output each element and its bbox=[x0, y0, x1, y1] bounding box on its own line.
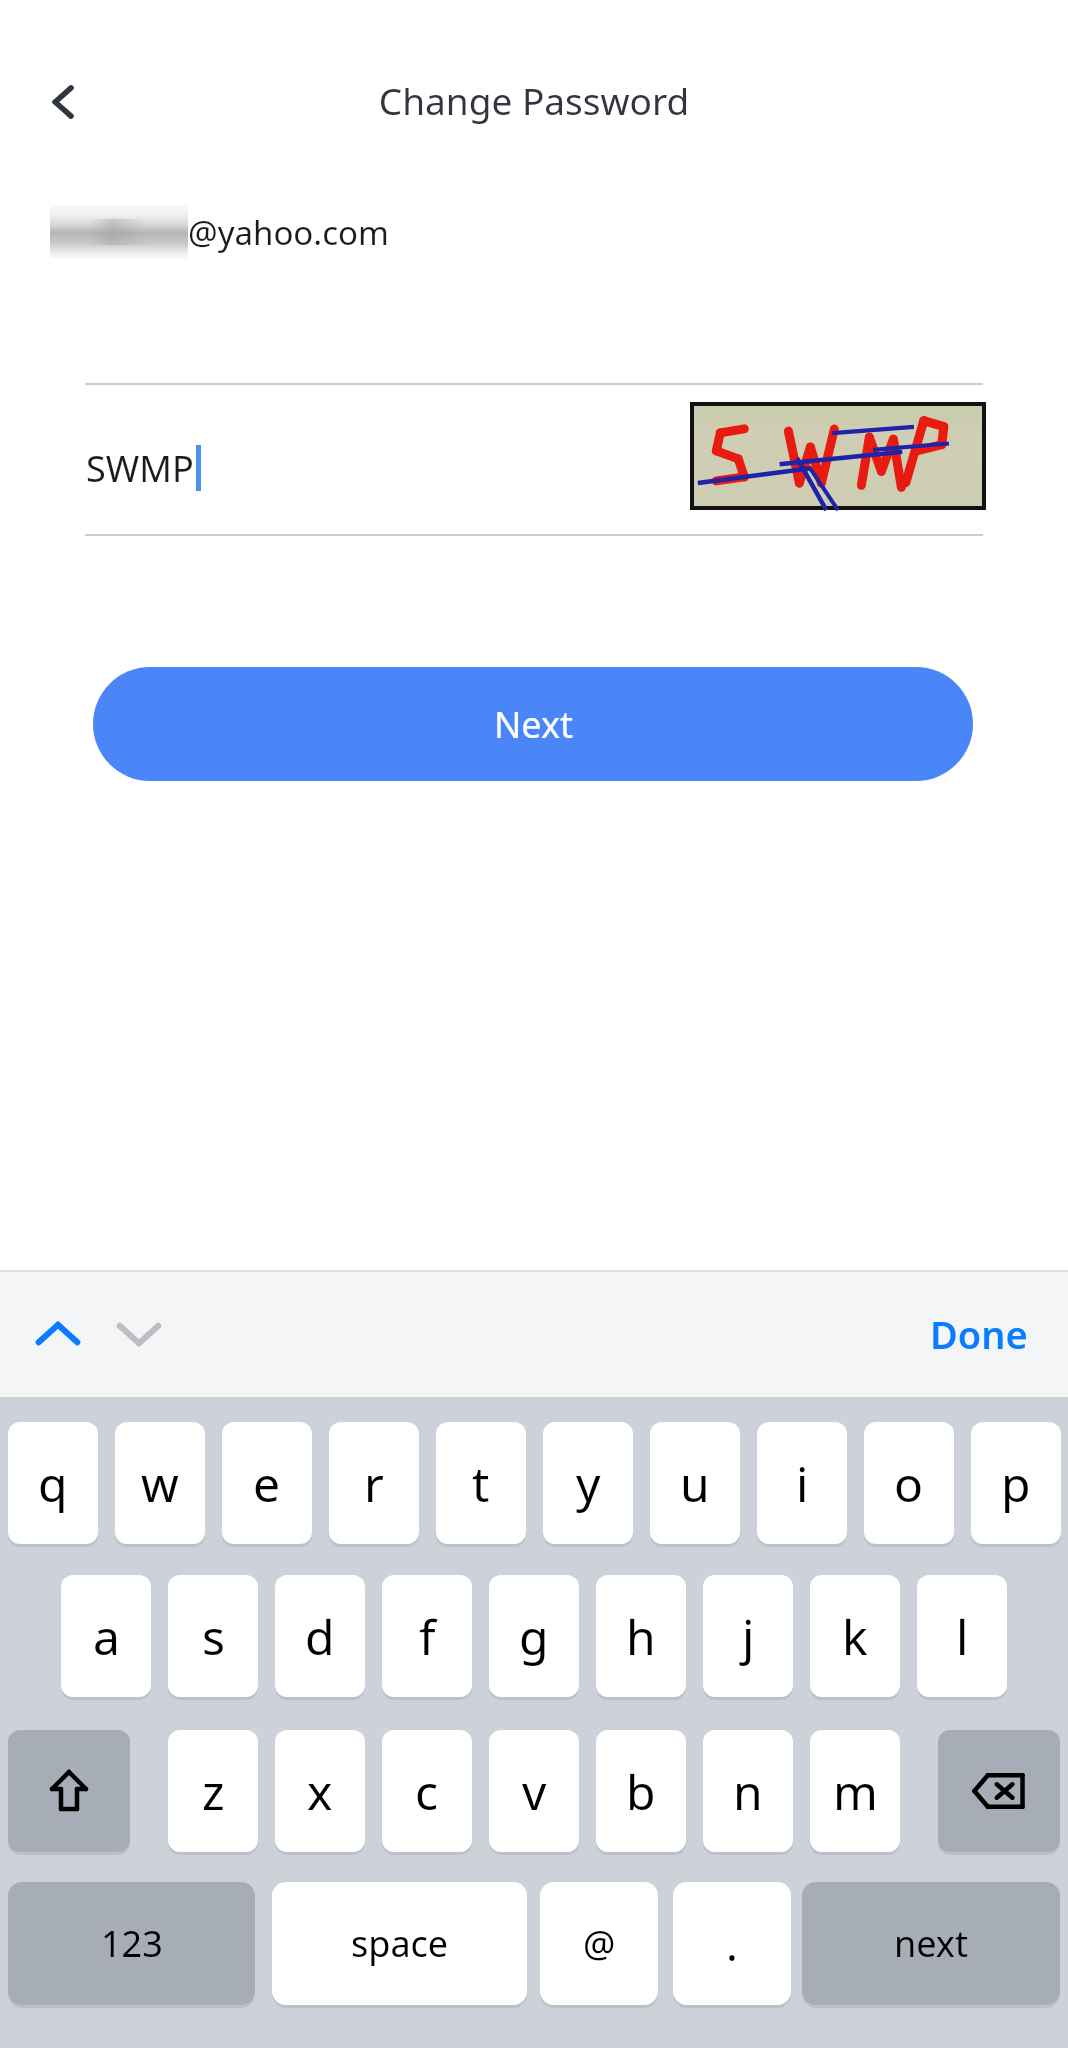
staticText: e bbox=[253, 1451, 281, 1516]
button[interactable]: x bbox=[275, 1730, 365, 1852]
button[interactable]: w bbox=[115, 1422, 205, 1544]
staticText: m bbox=[833, 1759, 878, 1824]
staticText: Next bbox=[494, 700, 573, 749]
staticText: @yahoo.com bbox=[188, 210, 389, 255]
staticText: l bbox=[956, 1604, 969, 1669]
button[interactable]: d bbox=[275, 1575, 365, 1697]
button[interactable]: i bbox=[757, 1422, 847, 1544]
button[interactable]: r bbox=[329, 1422, 419, 1544]
staticText: j bbox=[742, 1604, 755, 1669]
button[interactable]: y bbox=[543, 1422, 633, 1544]
button[interactable]: Shift bbox=[8, 1730, 130, 1852]
staticText: r bbox=[364, 1451, 384, 1516]
staticText: t bbox=[472, 1451, 490, 1516]
button[interactable]: Next bbox=[93, 667, 973, 781]
staticText: 123 bbox=[101, 1919, 163, 1968]
staticText: Change Password bbox=[0, 75, 1068, 125]
button[interactable]: m bbox=[810, 1730, 900, 1852]
staticText: z bbox=[202, 1759, 225, 1824]
button[interactable]: q bbox=[8, 1422, 98, 1544]
button[interactable]: . bbox=[673, 1882, 791, 2005]
button[interactable]: o bbox=[864, 1422, 954, 1544]
staticText: i bbox=[796, 1451, 809, 1516]
button[interactable]: a bbox=[61, 1575, 151, 1697]
button[interactable]: Captcha image, refresh bbox=[692, 404, 984, 508]
button[interactable]: next bbox=[802, 1882, 1060, 2005]
button[interactable]: e bbox=[222, 1422, 312, 1544]
staticText: next bbox=[894, 1919, 968, 1968]
button[interactable]: c bbox=[382, 1730, 472, 1852]
button[interactable]: v bbox=[489, 1730, 579, 1852]
staticText: d bbox=[305, 1604, 335, 1669]
staticText: n bbox=[733, 1759, 763, 1824]
staticText: v bbox=[522, 1759, 547, 1824]
staticText: f bbox=[419, 1604, 436, 1669]
staticText: g bbox=[519, 1604, 549, 1669]
staticText: space bbox=[351, 1919, 449, 1968]
staticText: c bbox=[415, 1759, 439, 1824]
button[interactable]: h bbox=[596, 1575, 686, 1697]
button[interactable]: space bbox=[272, 1882, 527, 2005]
button[interactable]: g bbox=[489, 1575, 579, 1697]
staticText: u bbox=[680, 1451, 710, 1516]
button[interactable]: 123 bbox=[8, 1882, 255, 2005]
button[interactable]: Back bbox=[24, 62, 104, 142]
staticText: a bbox=[93, 1604, 120, 1669]
button[interactable]: b bbox=[596, 1730, 686, 1852]
button[interactable]: s bbox=[168, 1575, 258, 1697]
button[interactable]: n bbox=[703, 1730, 793, 1852]
button[interactable]: Backspace bbox=[938, 1730, 1060, 1852]
staticText: y bbox=[576, 1451, 601, 1516]
staticText: o bbox=[894, 1451, 924, 1516]
staticText: k bbox=[842, 1604, 868, 1669]
staticText: SWMP bbox=[86, 444, 194, 493]
staticText: . bbox=[726, 1914, 738, 1974]
button[interactable]: SWMP bbox=[86, 436, 201, 500]
staticText: b bbox=[626, 1759, 656, 1824]
button[interactable]: t bbox=[436, 1422, 526, 1544]
staticText: x bbox=[307, 1759, 333, 1824]
staticText: p bbox=[1001, 1451, 1031, 1516]
button[interactable]: @ bbox=[540, 1882, 658, 2005]
button[interactable]: f bbox=[382, 1575, 472, 1697]
button[interactable]: j bbox=[703, 1575, 793, 1697]
button[interactable]: l bbox=[917, 1575, 1007, 1697]
button[interactable]: u bbox=[650, 1422, 740, 1544]
button[interactable]: z bbox=[168, 1730, 258, 1852]
button[interactable]: Done bbox=[930, 1308, 1028, 1360]
button[interactable]: Next field bbox=[103, 1298, 175, 1370]
staticText: @ bbox=[583, 1919, 616, 1968]
staticText: w bbox=[141, 1451, 179, 1516]
button[interactable]: p bbox=[971, 1422, 1061, 1544]
staticText: Done bbox=[930, 1308, 1028, 1360]
button[interactable]: k bbox=[810, 1575, 900, 1697]
staticText: s bbox=[202, 1604, 225, 1669]
staticText: q bbox=[38, 1451, 68, 1516]
staticText: h bbox=[626, 1604, 656, 1669]
button[interactable]: Previous field bbox=[22, 1298, 94, 1370]
